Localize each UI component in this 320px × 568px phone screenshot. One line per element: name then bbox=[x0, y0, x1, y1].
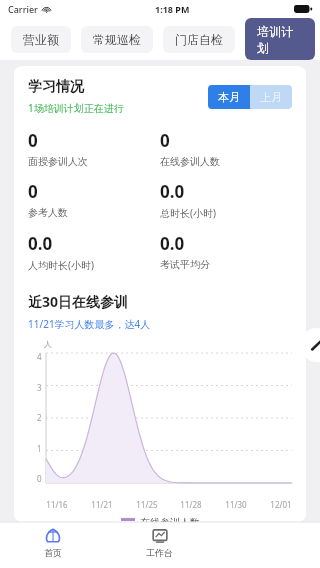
staticText: 总时长(小时) bbox=[160, 206, 216, 220]
staticText: 11/28 bbox=[180, 499, 202, 510]
staticText: 人 bbox=[44, 339, 52, 349]
staticText: 0.0 bbox=[160, 232, 185, 255]
staticText: 0 bbox=[28, 180, 38, 203]
staticText: 1场培训计划正在进行 bbox=[28, 101, 124, 115]
staticText: 学习情况 bbox=[28, 78, 84, 96]
staticText: 培训计划 bbox=[257, 24, 303, 54]
button[interactable]: 0.0 bbox=[28, 232, 160, 272]
button[interactable]: 工作台 bbox=[106, 522, 213, 568]
staticText: 11/30 bbox=[225, 499, 247, 510]
staticText: 工作台 bbox=[146, 547, 173, 558]
button[interactable]: 营业额 bbox=[11, 26, 71, 53]
button[interactable]: 上月 bbox=[250, 85, 292, 109]
button[interactable]: 门店自检 bbox=[163, 26, 235, 53]
staticText: 常规巡检 bbox=[93, 32, 141, 47]
staticText: 11/21 bbox=[91, 499, 113, 510]
staticText: 2 bbox=[37, 412, 42, 422]
staticText: 在线参训人数 bbox=[160, 155, 220, 168]
staticText: 11/21学习人数最多，达4人 bbox=[28, 317, 151, 331]
staticText: 0 bbox=[37, 473, 42, 483]
button[interactable]: 0 bbox=[160, 129, 292, 168]
staticText: 11/16 bbox=[46, 499, 68, 510]
button[interactable]: 常规巡检 bbox=[81, 26, 153, 53]
staticText: 人均时长(小时) bbox=[28, 258, 94, 272]
staticText: 门店自检 bbox=[175, 32, 223, 47]
staticText: 考试平均分 bbox=[160, 258, 210, 271]
staticText: 0.0 bbox=[28, 232, 53, 255]
button[interactable]: 培训计划 bbox=[245, 18, 315, 60]
staticText: 近30日在线参训 bbox=[28, 292, 129, 311]
staticText: 上月 bbox=[260, 90, 282, 104]
staticText: 0 bbox=[160, 129, 170, 152]
button[interactable]: 0.0 bbox=[160, 232, 292, 271]
staticText: 0.0 bbox=[160, 180, 185, 203]
staticText: 3 bbox=[37, 382, 42, 392]
staticText: 参考人数 bbox=[28, 206, 68, 219]
staticText: 面授参训人次 bbox=[28, 155, 88, 168]
staticText: 1 bbox=[37, 443, 42, 453]
staticText: 0 bbox=[28, 129, 38, 152]
button[interactable]: Edit bbox=[300, 328, 320, 362]
button[interactable]: 0 bbox=[28, 129, 160, 168]
staticText: Carrier bbox=[8, 3, 38, 15]
staticText: 营业额 bbox=[23, 32, 59, 47]
staticText: 11/25 bbox=[136, 499, 158, 510]
button[interactable]: 首页 bbox=[0, 522, 106, 568]
staticText: 在线参训人数 bbox=[140, 516, 200, 522]
button[interactable]: 0 bbox=[28, 180, 160, 219]
staticText: 4 bbox=[37, 351, 42, 361]
staticText: 1:18 PM bbox=[155, 3, 190, 15]
staticText: 12/01 bbox=[270, 499, 292, 510]
staticText: 本月 bbox=[218, 90, 240, 104]
button[interactable]: 0.0 bbox=[160, 180, 292, 220]
button[interactable]: 本月 bbox=[208, 85, 250, 109]
staticText: 首页 bbox=[44, 547, 62, 558]
